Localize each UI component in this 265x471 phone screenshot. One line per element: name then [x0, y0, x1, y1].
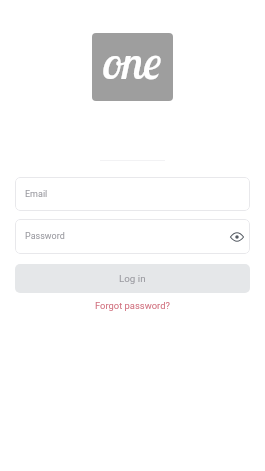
- staticText: Forgot password?: [95, 300, 170, 311]
- button[interactable]: Log in: [15, 264, 250, 293]
- staticText: Log in: [119, 273, 146, 284]
- button[interactable]: Email: [15, 177, 250, 211]
- button[interactable]: Show password: [226, 226, 248, 248]
- staticText: one: [103, 33, 162, 91]
- button[interactable]: Forgot password?: [87, 297, 178, 314]
- staticText: Email: [25, 189, 48, 200]
- button[interactable]: one logo: [92, 33, 173, 101]
- button[interactable]: Password: [15, 219, 250, 254]
- staticText: Password: [25, 231, 65, 242]
